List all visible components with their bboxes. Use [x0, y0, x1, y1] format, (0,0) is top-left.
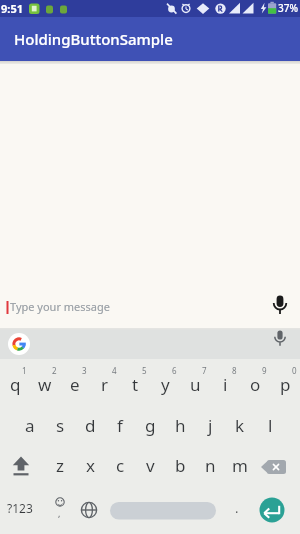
button[interactable]: z	[45, 452, 75, 478]
button[interactable]: n	[195, 452, 225, 478]
button[interactable]: s	[45, 412, 75, 438]
button[interactable]: d	[75, 412, 105, 438]
button[interactable]	[110, 500, 216, 521]
button[interactable]	[0, 447, 45, 487]
button[interactable]	[262, 287, 298, 323]
button[interactable]: f	[105, 412, 135, 438]
staticText: j	[208, 414, 213, 437]
button[interactable]: c	[105, 452, 135, 478]
button[interactable]: b	[165, 452, 195, 478]
button[interactable]	[75, 495, 103, 525]
button[interactable]	[4, 330, 34, 358]
staticText: 6	[172, 365, 177, 375]
staticText: .	[235, 499, 239, 517]
button[interactable]: t	[120, 371, 150, 397]
button[interactable]: o	[240, 371, 270, 397]
staticText: e	[70, 373, 80, 396]
staticText: Type your message	[10, 299, 110, 314]
staticText: o	[250, 373, 261, 396]
staticText: z	[56, 454, 64, 477]
staticText: l	[268, 414, 273, 437]
button[interactable]: a	[15, 412, 45, 438]
staticText: 7	[202, 365, 207, 375]
staticText: 3	[82, 365, 87, 375]
button[interactable]: l	[255, 412, 285, 438]
button[interactable]: q	[0, 371, 30, 397]
staticText: m	[232, 454, 248, 477]
staticText: c	[116, 454, 125, 477]
button[interactable]: y	[150, 371, 180, 397]
button[interactable]: h	[165, 412, 195, 438]
button[interactable]: p	[270, 371, 300, 397]
button[interactable]	[258, 496, 286, 524]
button[interactable]: v	[135, 452, 165, 478]
staticText: w	[38, 373, 52, 396]
staticText: y	[161, 373, 170, 396]
button[interactable]: x	[75, 452, 105, 478]
staticText: p	[280, 373, 291, 396]
button[interactable]: .	[229, 497, 245, 519]
staticText: i	[223, 373, 228, 396]
staticText: 5	[142, 365, 147, 375]
button[interactable]: k	[225, 412, 255, 438]
staticText: 1	[22, 365, 27, 375]
staticText: t	[132, 373, 139, 396]
staticText: 8	[232, 365, 237, 375]
button[interactable]: i	[210, 371, 240, 397]
staticText: HoldingButtonSample	[14, 29, 173, 49]
button[interactable]: w	[30, 371, 60, 397]
staticText: x	[86, 454, 95, 477]
staticText: d	[85, 414, 96, 437]
staticText: 4	[112, 365, 117, 375]
staticText: s	[56, 414, 65, 437]
button[interactable]	[255, 447, 300, 487]
staticText: g	[145, 414, 156, 437]
button[interactable]: ?123	[1, 497, 39, 519]
button[interactable]: j	[195, 412, 225, 438]
staticText: r	[101, 373, 109, 396]
staticText: a	[25, 414, 35, 437]
staticText: k	[235, 414, 245, 437]
button[interactable]	[264, 328, 296, 358]
staticText: 0	[292, 365, 297, 375]
staticText: ?123	[7, 500, 33, 516]
button[interactable]: e	[60, 371, 90, 397]
button[interactable]: Type your message	[0, 272, 262, 329]
staticText: b	[175, 454, 186, 477]
staticText: 37%	[278, 1, 298, 15]
staticText: 9:51	[1, 1, 23, 16]
staticText: 9	[262, 365, 267, 375]
button[interactable]: g	[135, 412, 165, 438]
staticText: q	[10, 373, 21, 396]
staticText: f	[117, 414, 123, 437]
staticText: ,	[58, 507, 61, 519]
staticText: h	[175, 414, 186, 437]
staticText: v	[146, 454, 155, 477]
staticText: u	[190, 373, 201, 396]
button[interactable]: r	[90, 371, 120, 397]
staticText: 2	[52, 365, 57, 375]
staticText: n	[205, 454, 216, 477]
button[interactable]: u	[180, 371, 210, 397]
button[interactable]: m	[225, 452, 255, 478]
